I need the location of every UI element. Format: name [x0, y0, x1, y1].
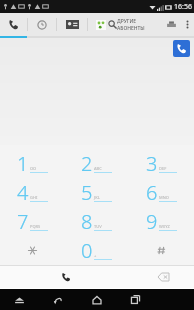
staticText: 6 [146, 179, 158, 206]
button[interactable]: Call [173, 40, 190, 57]
button[interactable]: 8 [64, 207, 129, 236]
staticText: JKL [94, 195, 100, 200]
staticText: PQRS [30, 224, 41, 229]
staticText: 9 [146, 208, 158, 235]
staticText: 2 [81, 150, 93, 177]
staticText: ОО [30, 166, 37, 171]
button[interactable]: Hide keyboard [0, 289, 38, 310]
staticText: TUV [94, 224, 102, 229]
button[interactable]: 4 [0, 178, 64, 207]
button[interactable]: ДРУГИЕ АБОНЕНТЫ [108, 13, 161, 36]
button[interactable]: Dialpad [0, 13, 27, 36]
staticText: 5 [81, 179, 93, 206]
button[interactable]: Back [38, 289, 77, 310]
button[interactable]: 1 [0, 148, 64, 178]
staticText: 0 [81, 237, 93, 264]
button[interactable]: 2 [64, 148, 129, 178]
button[interactable]: 6 [129, 178, 194, 207]
button[interactable]: 5 [64, 178, 129, 207]
staticText: 16:56 [174, 2, 192, 12]
button[interactable] [0, 236, 64, 265]
staticText: WXYZ [159, 224, 170, 229]
button[interactable]: Home [77, 289, 116, 310]
staticText: 3 [146, 150, 158, 177]
button[interactable]: Device [161, 13, 181, 36]
staticText: 1 [17, 150, 29, 177]
staticText: + [94, 253, 97, 258]
button[interactable]: 7 [0, 207, 64, 236]
staticText: MNO [159, 195, 169, 200]
staticText: GHI [30, 195, 38, 200]
button[interactable]: 9 [129, 207, 194, 236]
button[interactable]: 0 [64, 236, 129, 265]
button[interactable]: Recents [28, 13, 56, 36]
button[interactable]: 3 [129, 148, 194, 178]
button[interactable]: Contacts [57, 13, 87, 36]
staticText: 4 [17, 179, 29, 206]
button[interactable]: More options [181, 13, 194, 36]
button[interactable]: Call [0, 266, 132, 288]
button[interactable]: Backspace [132, 266, 194, 288]
staticText: 7 [17, 208, 29, 235]
staticText: ABC [94, 166, 102, 171]
button[interactable]: Promo [93, 13, 108, 36]
staticText: ДРУГИЕ АБОНЕНТЫ [117, 18, 161, 32]
button[interactable] [129, 236, 194, 265]
staticText: DEF [159, 166, 167, 171]
button[interactable]: Recent apps [116, 289, 155, 310]
staticText: 8 [81, 208, 93, 235]
